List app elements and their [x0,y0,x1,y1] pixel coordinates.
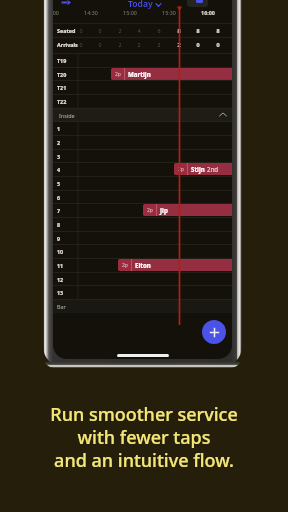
staticText: 8 [193,27,203,34]
button[interactable]: Bar [53,299,232,313]
staticText: 15:30 [157,9,181,16]
staticText: Elton [135,261,151,269]
button[interactable]: Back [60,0,72,11]
staticText: 2p [178,166,184,173]
staticText: 2p [147,207,153,214]
button[interactable]: 2p [143,204,232,216]
staticText: Stijn [191,165,205,173]
button[interactable]: 2p [111,68,232,80]
staticText: 4 [134,27,144,34]
staticText: 2 [154,41,164,48]
staticText: 10 [57,248,64,255]
button[interactable]: 2p [118,259,232,271]
staticText: 6 [57,194,61,201]
staticText: 15:00 [118,9,142,16]
staticText: 14:00 [53,9,64,16]
staticText: 0 [213,41,223,48]
staticText: 0 [193,41,203,48]
button[interactable]: View mode [187,0,208,7]
button[interactable]: Add reservation [202,320,226,344]
button[interactable]: Today [128,0,162,10]
staticText: 13 [57,289,64,296]
staticText: 2 [115,41,125,48]
staticText: 0 [95,27,105,34]
button[interactable]: 2p [174,163,232,175]
staticText: 16:00 [196,9,220,16]
staticText: 2nd [207,165,219,173]
staticText: 2 [57,139,61,146]
staticText: 5 [57,180,61,187]
staticText: 12 [57,276,64,283]
staticText: 2p [115,71,121,78]
staticText: T21 [57,84,67,91]
staticText: 2 [115,27,125,34]
staticText: 1 [57,125,61,132]
staticText: 9 [57,235,61,242]
staticText: 8 [213,27,223,34]
staticText: Today [128,0,153,10]
staticText: Seated [57,27,76,34]
staticText: 7 [57,207,61,214]
staticText: 3 [57,153,61,160]
staticText: Inside [59,112,75,119]
staticText: 8 [174,27,184,34]
staticText: T19 [57,57,67,64]
staticText: 2p [122,262,128,269]
staticText: 2 [174,41,184,48]
staticText: 0 [76,27,86,34]
staticText: 2 [134,41,144,48]
staticText: 8 [57,221,61,228]
staticText: T22 [57,98,67,105]
staticText: Martijn [128,70,151,78]
staticText: 14:30 [79,9,103,16]
staticText: 0 [95,41,105,48]
staticText: Jip [160,206,168,214]
staticText: T20 [57,71,67,78]
staticText: 11 [57,262,64,269]
staticText: Arrivals [57,41,78,48]
staticText: Bar [57,303,66,310]
button[interactable]: Inside [53,108,232,122]
staticText: Run smoother service with fewer taps and… [0,402,288,472]
staticText: 4 [57,166,61,173]
staticText: 6 [154,27,164,34]
staticText: 0 [76,41,86,48]
